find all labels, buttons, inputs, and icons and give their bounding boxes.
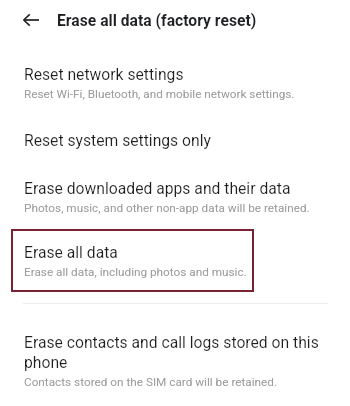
button[interactable]: Erase all data	[11, 229, 254, 292]
staticText: Contacts stored on the SIM card will be …	[24, 375, 278, 389]
staticText: Erase all data (factory reset)	[57, 11, 257, 29]
button[interactable]: Erase contacts and call logs stored on t…	[0, 304, 350, 389]
staticText: Erase all data, including photos and mus…	[24, 265, 247, 279]
staticText: Reset Wi-Fi, Bluetooth, and mobile netwo…	[24, 87, 295, 101]
staticText: Erase all data	[24, 242, 118, 262]
staticText: Reset network settings	[24, 64, 184, 84]
staticText: Reset system settings only	[24, 130, 211, 150]
staticText: Photos, music, and other non-app data wi…	[24, 201, 310, 215]
button[interactable]: Reset network settings	[0, 40, 350, 101]
button[interactable]: Reset system settings only	[0, 101, 350, 150]
staticText: Erase downloaded apps and their data	[24, 178, 291, 198]
button[interactable]: Navigate up	[15, 4, 47, 36]
staticText: Erase contacts and call logs stored on t…	[24, 332, 326, 372]
button[interactable]: Erase downloaded apps and their data	[0, 150, 350, 215]
